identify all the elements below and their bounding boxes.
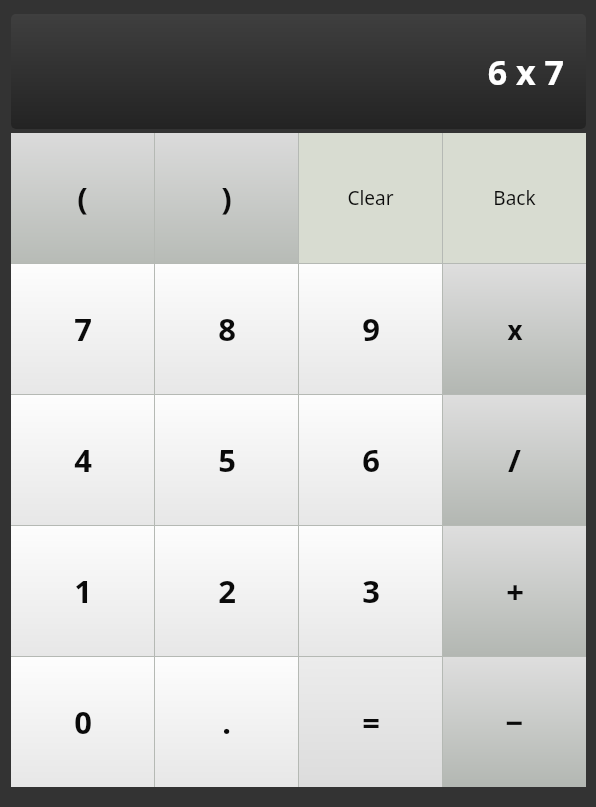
button[interactable]: = bbox=[299, 657, 442, 787]
button[interactable]: 2 bbox=[155, 526, 298, 656]
staticText: 4 bbox=[74, 439, 92, 481]
staticText: 7 bbox=[74, 308, 92, 350]
staticText: 8 bbox=[218, 308, 236, 350]
staticText: x bbox=[507, 312, 523, 347]
staticText: 6 x 7 bbox=[487, 49, 564, 95]
staticText: / bbox=[508, 439, 521, 481]
staticText: 5 bbox=[218, 439, 236, 481]
button[interactable]: 5 bbox=[155, 395, 298, 525]
staticText: ) bbox=[221, 177, 232, 219]
button[interactable]: . bbox=[155, 657, 298, 787]
button[interactable]: 6 bbox=[299, 395, 442, 525]
button[interactable]: / bbox=[443, 395, 586, 525]
button[interactable]: 8 bbox=[155, 264, 298, 394]
button[interactable]: Back bbox=[443, 133, 586, 263]
staticText: Back bbox=[493, 185, 536, 211]
staticText: 6 bbox=[362, 439, 380, 481]
staticText: 1 bbox=[74, 570, 92, 612]
button[interactable]: 9 bbox=[299, 264, 442, 394]
button[interactable]: Clear bbox=[299, 133, 442, 263]
staticText: 2 bbox=[218, 570, 236, 612]
staticText: 3 bbox=[362, 570, 380, 612]
button[interactable]: − bbox=[443, 657, 586, 787]
button[interactable]: 6 x 7 bbox=[11, 14, 586, 129]
button[interactable]: ( bbox=[11, 133, 154, 263]
staticText: Clear bbox=[347, 185, 394, 211]
staticText: + bbox=[506, 570, 524, 612]
button[interactable]: 4 bbox=[11, 395, 154, 525]
button[interactable]: 3 bbox=[299, 526, 442, 656]
staticText: − bbox=[505, 701, 524, 743]
staticText: = bbox=[362, 701, 380, 743]
button[interactable]: 7 bbox=[11, 264, 154, 394]
button[interactable]: 0 bbox=[11, 657, 154, 787]
staticText: 9 bbox=[362, 308, 380, 350]
button[interactable]: 1 bbox=[11, 526, 154, 656]
staticText: . bbox=[222, 701, 231, 743]
staticText: 0 bbox=[74, 701, 92, 743]
staticText: ( bbox=[77, 177, 88, 219]
button[interactable]: x bbox=[443, 264, 586, 394]
button[interactable]: + bbox=[443, 526, 586, 656]
button[interactable]: ) bbox=[155, 133, 298, 263]
